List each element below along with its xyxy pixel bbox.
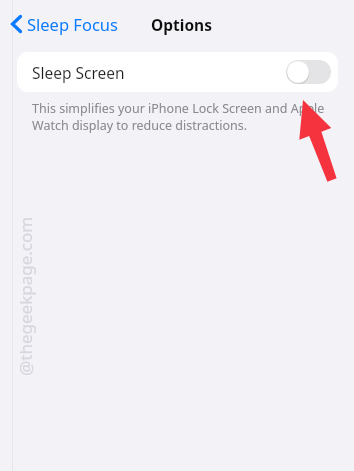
staticText: This simplifies your iPhone Lock Screen … xyxy=(32,100,332,133)
button[interactable]: Sleep Focus xyxy=(8,9,121,39)
button[interactable]: Sleep Screen xyxy=(17,52,338,92)
staticText: Options xyxy=(151,14,212,35)
staticText: @thegeekpage.com xyxy=(14,216,36,376)
staticText: Sleep Focus xyxy=(27,13,118,35)
button[interactable]: Sleep Screen toggle, off xyxy=(286,60,331,84)
staticText: Sleep Screen xyxy=(32,62,125,83)
